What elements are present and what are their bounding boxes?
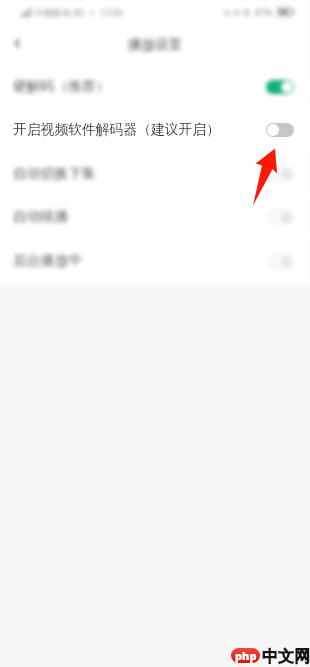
staticText: 硬解码（推荐） — [13, 78, 110, 95]
staticText: php — [235, 648, 257, 663]
staticText: 中文网 — [262, 647, 310, 667]
button[interactable]: Switch off — [267, 123, 294, 137]
button[interactable]: Back — [6, 32, 28, 54]
button[interactable]: 开启视频软件解码器（建议开启） — [0, 108, 310, 151]
button[interactable]: 自动续播 — [0, 195, 310, 238]
button[interactable]: Switch off — [266, 123, 294, 137]
button[interactable]: 自动切换下集 — [0, 152, 310, 195]
button[interactable]: 后台播放中 — [0, 239, 310, 282]
staticText: 开启视频软件解码器（建议开启） — [13, 121, 220, 138]
button[interactable]: Switch off — [267, 210, 294, 224]
button[interactable]: Switch off — [267, 254, 294, 268]
button[interactable]: Switch off — [267, 167, 294, 181]
button[interactable]: Switch on — [266, 80, 294, 94]
staticText: 开启视频软件解码器（建议开启） — [13, 121, 220, 138]
staticText: 播放设置 — [128, 36, 182, 53]
staticText: ⊙ ≋ ⇅ 87% — [223, 6, 278, 18]
staticText: 中国移动 4G ⚡ 12:06 — [32, 6, 124, 18]
button[interactable]: 硬解码（推荐） — [0, 65, 310, 108]
button[interactable]: 开启视频软件解码器（建议开启） — [0, 108, 310, 151]
staticText: 自动续播 — [13, 208, 69, 225]
staticText: 后台播放中 — [13, 252, 82, 269]
staticText: 自动切换下集 — [13, 165, 96, 182]
